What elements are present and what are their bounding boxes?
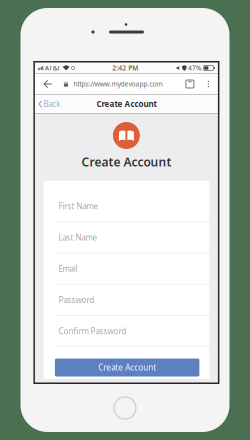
- staticText: Password: [58, 294, 94, 305]
- button[interactable]: Email: [43, 253, 209, 285]
- staticText: Back: [43, 99, 60, 109]
- staticText: 2:42 PM: [112, 64, 138, 72]
- button[interactable]: Back: [35, 94, 64, 113]
- staticText: Last Name: [58, 232, 97, 243]
- button[interactable]: Create Account: [43, 358, 209, 376]
- staticText: Create Account: [96, 99, 156, 109]
- button[interactable]: Menu: [199, 73, 218, 94]
- staticText: Confirm Password: [58, 326, 126, 336]
- staticText: 47%: [188, 64, 202, 72]
- button[interactable]: Password: [43, 285, 209, 316]
- staticText: First Name: [58, 201, 98, 211]
- button[interactable]: Back: [35, 73, 59, 94]
- button[interactable]: https://www.mydevoapp.com: [59, 73, 181, 94]
- staticText: Create Account: [81, 154, 171, 170]
- staticText: Create Account: [98, 362, 156, 373]
- staticText: https://www.mydevoapp.com: [74, 80, 163, 88]
- staticText: AT&T: [45, 64, 61, 72]
- button[interactable]: Confirm Password: [43, 316, 209, 347]
- button[interactable]: First Name: [43, 191, 209, 222]
- button[interactable]: Last Name: [43, 222, 209, 253]
- staticText: Email: [58, 263, 77, 274]
- button[interactable]: Tabs: [181, 73, 199, 94]
